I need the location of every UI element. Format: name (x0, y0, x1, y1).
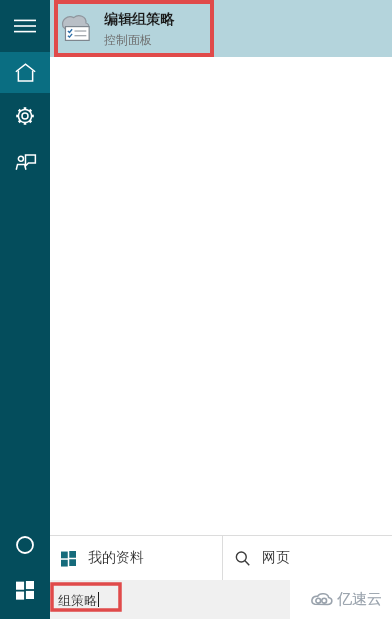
button[interactable]: 网页 (223, 536, 392, 580)
button[interactable]: 组策略 (50, 580, 290, 619)
button[interactable]: Settings (0, 93, 50, 139)
button[interactable]: 我的资料 (50, 536, 222, 580)
button[interactable]: Start (0, 567, 50, 613)
button[interactable]: 编辑组策略 (50, 0, 392, 57)
staticText: 组策略 (58, 592, 97, 608)
staticText: 编辑组策略 (104, 11, 174, 29)
staticText: 控制面板 (104, 32, 152, 47)
button[interactable]: Menu (0, 0, 50, 52)
button[interactable]: Home (0, 52, 50, 93)
staticText: 亿速云 (337, 590, 382, 609)
button[interactable]: Cortana (0, 523, 50, 567)
staticText: 我的资料 (88, 549, 144, 567)
button[interactable]: Feedback (0, 139, 50, 185)
staticText: 网页 (262, 549, 290, 567)
